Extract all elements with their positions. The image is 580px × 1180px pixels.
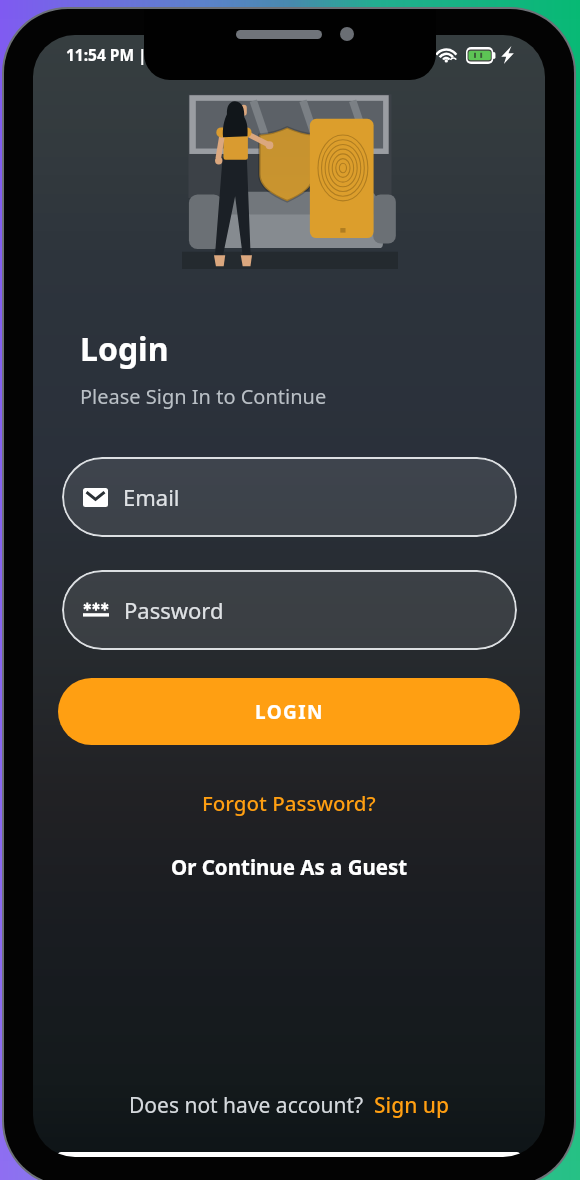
staticText: 11:54 PM | (66, 44, 147, 65)
staticText: LOGIN (255, 699, 324, 725)
button[interactable]: Or Continue As a Guest (33, 851, 545, 883)
other: Wi-Fi (435, 46, 459, 64)
button[interactable]: LOGIN (58, 678, 520, 745)
staticText: Please Sign In to Continue (80, 383, 327, 410)
staticText: Login (80, 327, 169, 371)
button[interactable]: Password (62, 570, 517, 650)
other: Charging (501, 46, 514, 64)
staticText: Email (123, 482, 180, 512)
button[interactable]: Sign up (374, 1091, 450, 1120)
staticText: Does not have account? (129, 1091, 364, 1120)
staticText: Forgot Password? (202, 789, 376, 817)
other: Battery (466, 47, 497, 64)
button[interactable]: Forgot Password? (33, 787, 545, 819)
button[interactable]: Email (62, 457, 517, 537)
staticText: Sign up (374, 1091, 450, 1120)
staticText: Or Continue As a Guest (171, 853, 408, 881)
staticText: Password (124, 595, 224, 625)
